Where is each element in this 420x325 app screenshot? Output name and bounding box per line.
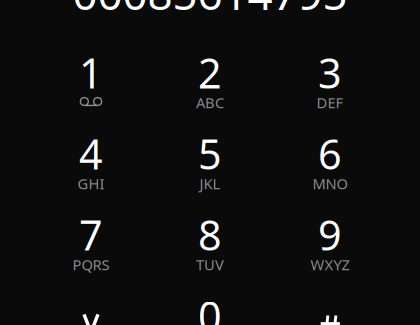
staticText: 7 (79, 207, 103, 262)
staticText: 2 (198, 45, 222, 100)
staticText: WXYZ (310, 255, 349, 274)
staticText: ABC (196, 93, 224, 112)
button[interactable]: Star (31, 286, 150, 325)
button[interactable]: 9 WXYZ (270, 205, 389, 286)
button[interactable]: 2 ABC (150, 43, 269, 124)
staticText: 9 (318, 207, 342, 262)
staticText: 00085614795 (72, 0, 347, 22)
button[interactable]: 0 (150, 286, 269, 325)
staticText: MNO (312, 174, 347, 193)
button[interactable]: Pound (270, 286, 389, 325)
staticText: GHI (77, 174, 104, 193)
staticText: 5 (198, 126, 222, 181)
staticText: JKL (199, 174, 220, 193)
button[interactable]: 8 TUV (150, 205, 269, 286)
staticText: 4 (79, 126, 103, 181)
button[interactable]: 3 DEF (270, 43, 389, 124)
staticText: 6 (318, 126, 342, 181)
staticText: TUV (196, 255, 224, 274)
button[interactable]: 5 JKL (150, 124, 269, 205)
button[interactable]: 7 PQRS (31, 205, 150, 286)
staticText: DEF (316, 93, 343, 112)
button[interactable]: 6 MNO (270, 124, 389, 205)
staticText: PQRS (72, 255, 109, 274)
staticText: 3 (318, 45, 342, 100)
staticText: 8 (198, 207, 222, 262)
staticText: 0 (198, 288, 222, 325)
staticText: 1 (79, 45, 103, 100)
button[interactable]: 1 (31, 43, 150, 124)
button[interactable]: 4 GHI (31, 124, 150, 205)
